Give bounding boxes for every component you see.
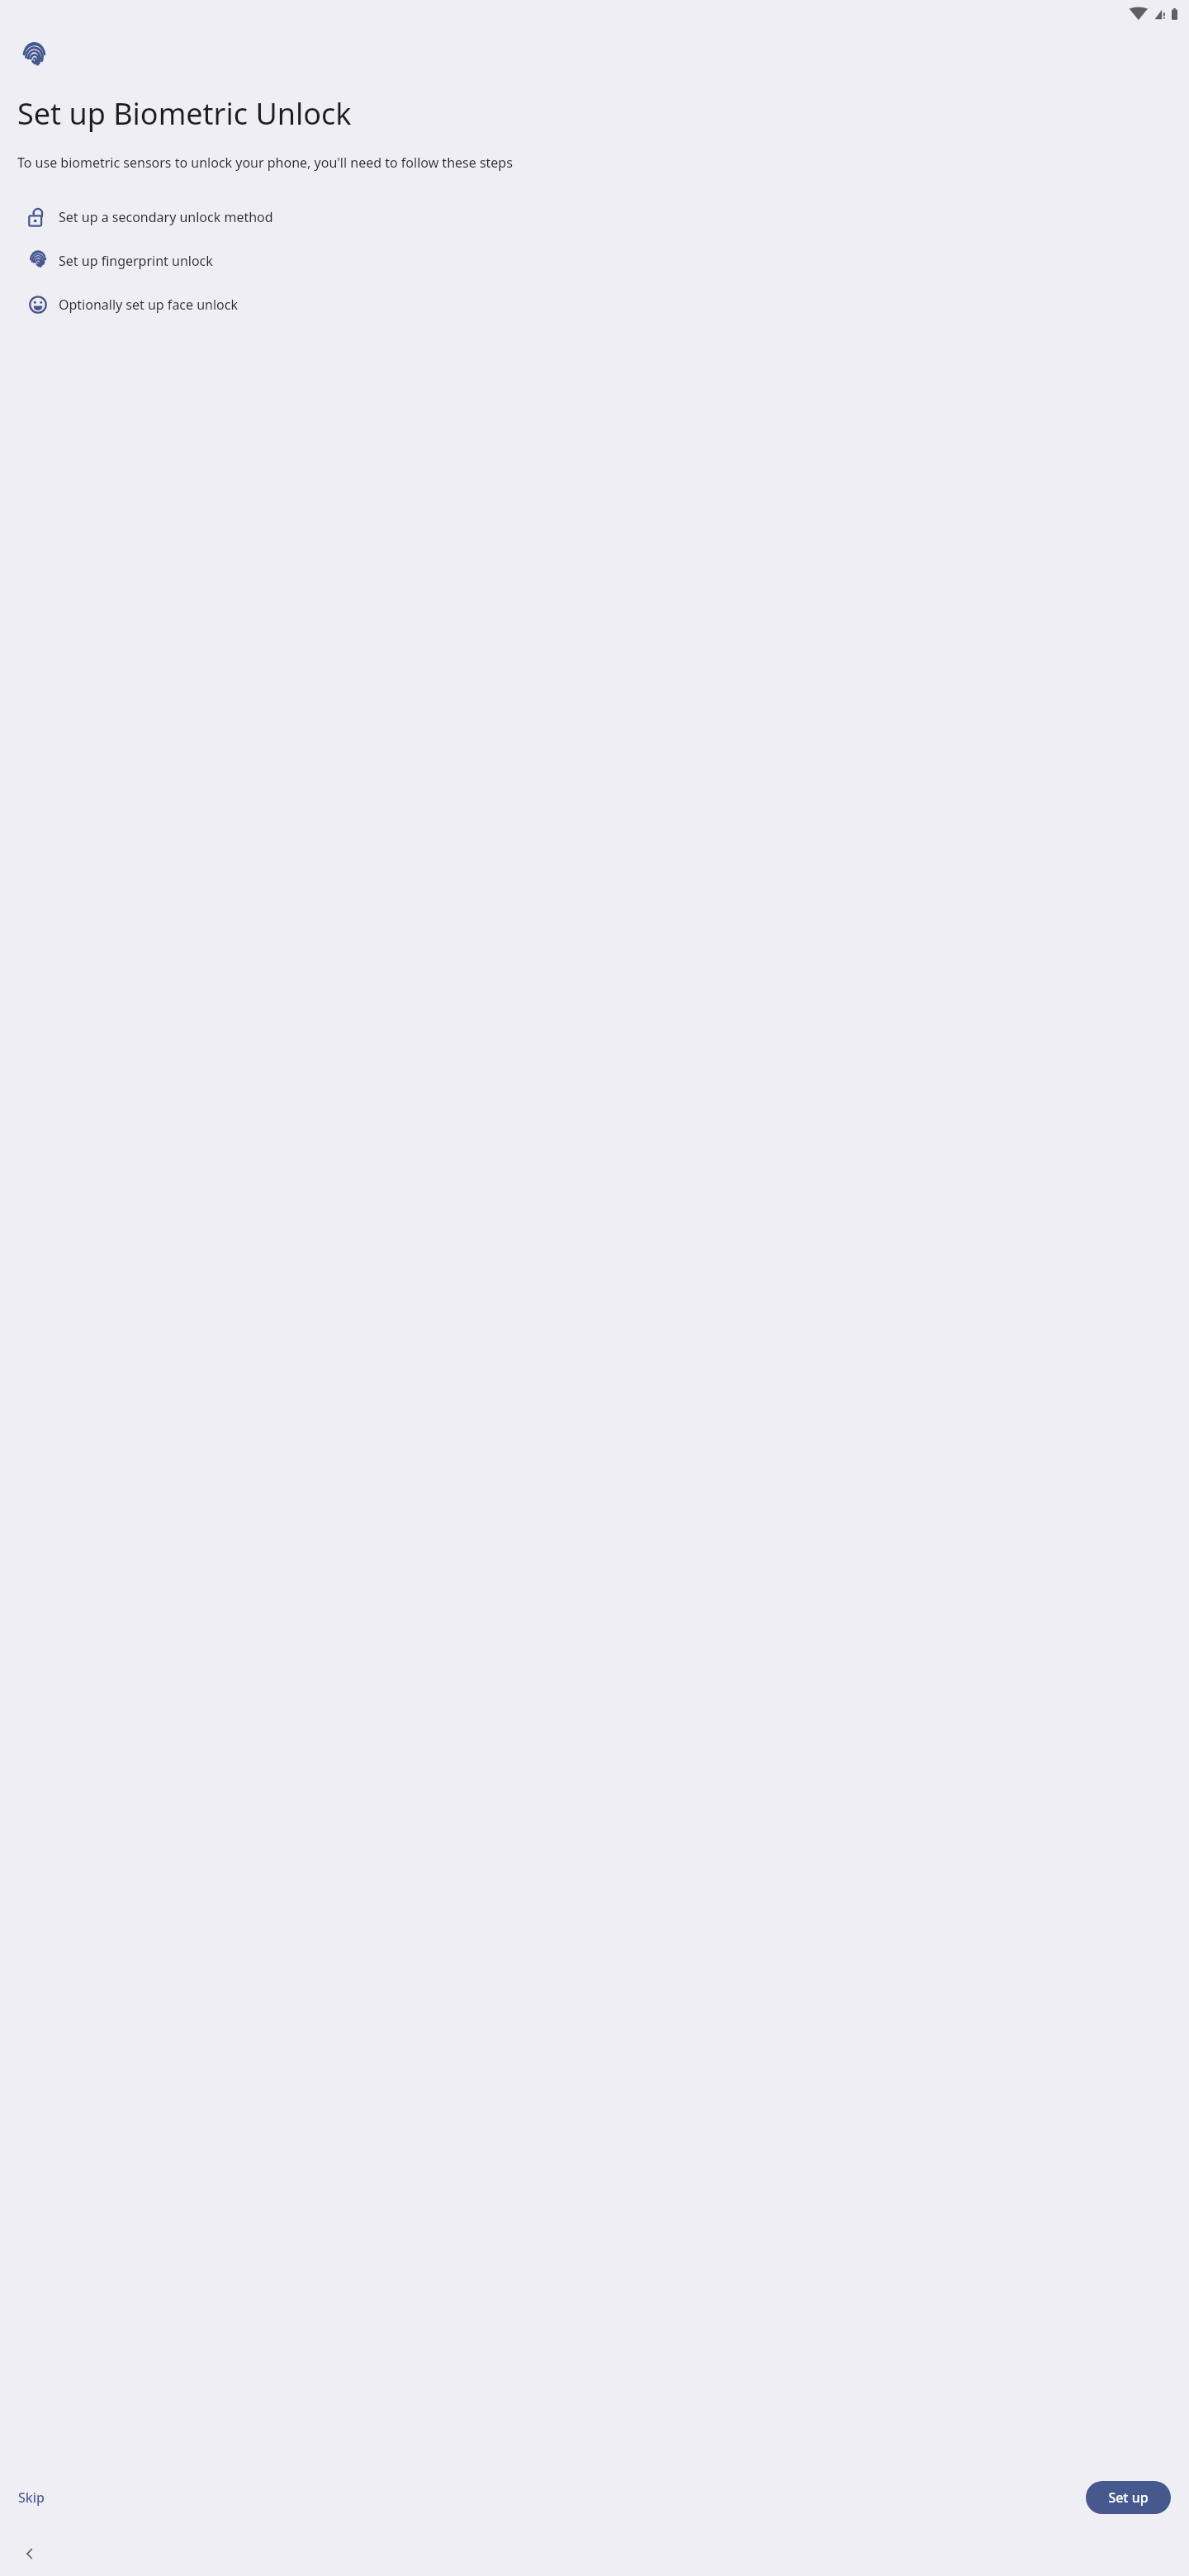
button[interactable]: Set up fingerprint unlock — [0, 245, 1189, 277]
staticText: To use biometric sensors to unlock your … — [17, 154, 1179, 172]
staticText: Set up a secondary unlock method — [59, 208, 273, 226]
staticText: Optionally set up face unlock — [59, 296, 239, 314]
staticText: Set up — [1108, 2488, 1149, 2507]
button[interactable]: Set up a secondary unlock method — [0, 201, 1189, 233]
button[interactable]: Back — [15, 2539, 45, 2569]
staticText: Set up Biometric Unlock — [17, 93, 1151, 134]
staticText: Set up fingerprint unlock — [59, 252, 213, 270]
button[interactable]: Optionally set up face unlock — [0, 289, 1189, 320]
staticText: Skip — [18, 2488, 45, 2507]
button[interactable]: Skip — [8, 2480, 54, 2515]
button[interactable]: Set up — [1086, 2481, 1171, 2514]
